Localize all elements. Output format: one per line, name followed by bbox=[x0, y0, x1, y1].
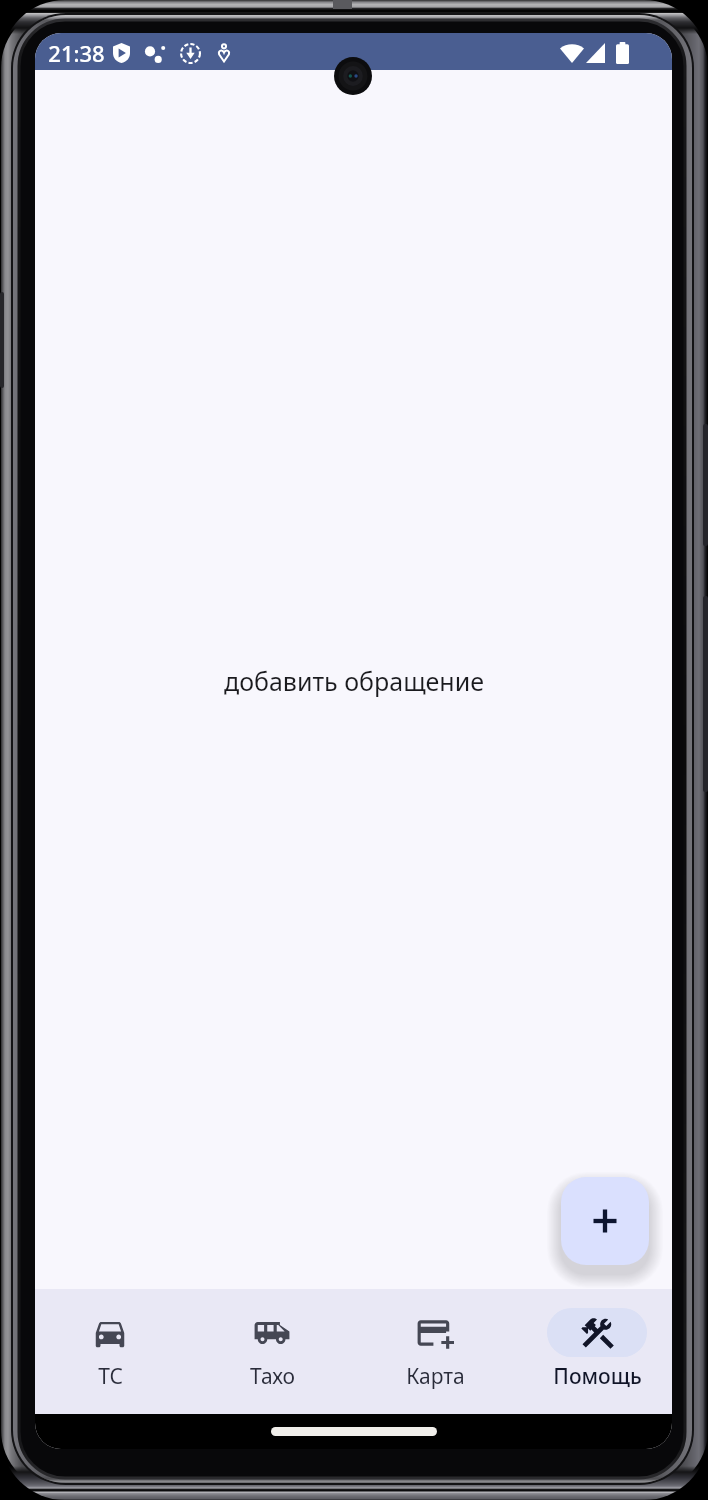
button[interactable]: Помощь bbox=[516, 1289, 672, 1414]
button[interactable]: Карта bbox=[354, 1289, 516, 1414]
staticText: Карта bbox=[406, 1362, 465, 1391]
staticText: ТС bbox=[98, 1362, 123, 1391]
staticText: 21:38 bbox=[48, 38, 105, 68]
staticText: Тахо bbox=[250, 1362, 295, 1391]
staticText: Помощь bbox=[553, 1362, 642, 1391]
button[interactable]: ТС bbox=[35, 1289, 191, 1414]
staticText: добавить обращение bbox=[224, 664, 484, 698]
button[interactable]: Добавить обращение bbox=[561, 1177, 649, 1265]
button[interactable]: Тахо bbox=[191, 1289, 353, 1414]
